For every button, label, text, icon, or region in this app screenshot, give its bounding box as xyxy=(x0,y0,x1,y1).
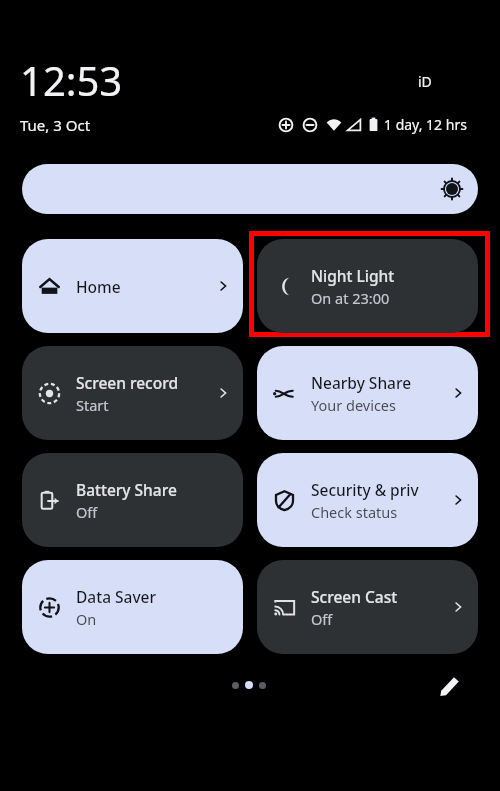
staticText: iD xyxy=(418,72,432,91)
button[interactable]: Data Saver xyxy=(22,560,243,654)
button[interactable]: Screen Cast xyxy=(257,560,478,654)
other: Brightness xyxy=(442,179,462,199)
button[interactable]: Screen record xyxy=(22,346,243,440)
button[interactable]: Brightness xyxy=(22,164,478,214)
staticText: 1 day, 12 hrs xyxy=(384,115,467,134)
staticText: Screen Cast xyxy=(311,586,398,607)
button[interactable]: Night Light xyxy=(257,239,478,333)
staticText: On xyxy=(76,609,97,629)
staticText: Nearby Share xyxy=(311,372,412,393)
staticText: Tue, 3 Oct xyxy=(20,115,91,135)
staticText: Off xyxy=(76,502,98,522)
staticText: On at 23:00 xyxy=(311,288,390,308)
staticText: Screen record xyxy=(76,372,179,393)
button[interactable]: Home xyxy=(22,239,243,333)
staticText: Battery Share xyxy=(76,479,177,500)
button[interactable]: Nearby Share xyxy=(257,346,478,440)
button[interactable]: Battery Share xyxy=(22,453,243,547)
staticText: Home xyxy=(76,276,121,297)
staticText: Your devices xyxy=(311,395,396,415)
staticText: Check status xyxy=(311,502,398,522)
staticText: Start xyxy=(76,395,109,415)
staticText: Security & priv xyxy=(311,479,419,500)
button[interactable]: Security & priv xyxy=(257,453,478,547)
staticText: 12:53 xyxy=(20,53,123,107)
staticText: Data Saver xyxy=(76,586,157,607)
staticText: Night Light xyxy=(311,265,395,286)
button[interactable]: Edit xyxy=(432,668,468,704)
staticText: Off xyxy=(311,609,333,629)
